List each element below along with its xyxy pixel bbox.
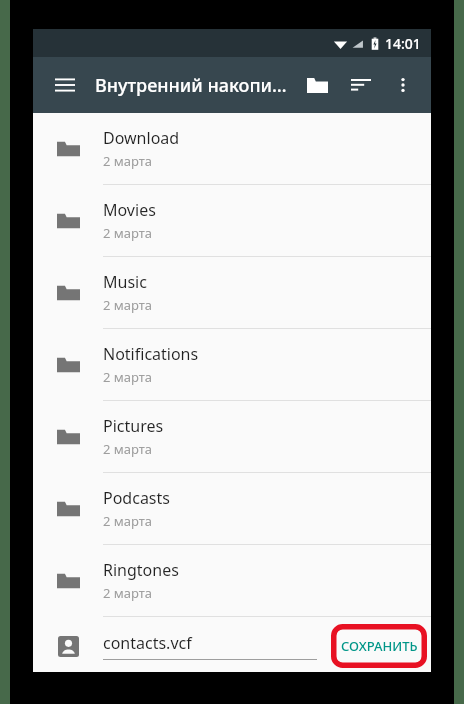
staticText: Podcasts: [103, 487, 170, 509]
staticText: Pictures: [103, 415, 164, 437]
button[interactable]: Sort: [341, 65, 381, 105]
button[interactable]: Music: [33, 257, 431, 328]
button[interactable]: Download: [33, 113, 431, 184]
staticText: Download: [103, 127, 180, 149]
staticText: 2 марта: [103, 368, 153, 386]
staticText: СОХРАНИТЬ: [341, 637, 418, 655]
button[interactable]: Menu: [45, 65, 85, 105]
staticText: 14:01: [385, 34, 421, 53]
button[interactable]: New folder: [297, 65, 337, 105]
staticText: 2 марта: [103, 152, 153, 170]
staticText: 2 марта: [103, 512, 153, 530]
button[interactable]: More options: [383, 65, 423, 105]
staticText: 2 марта: [103, 440, 153, 458]
staticText: contacts.vcf: [103, 632, 192, 654]
staticText: 2 марта: [103, 584, 153, 602]
staticText: Ringtones: [103, 559, 179, 581]
staticText: Внутренний накопи…: [95, 73, 287, 98]
staticText: Music: [103, 271, 147, 293]
button[interactable]: Notifications: [33, 329, 431, 400]
staticText: Notifications: [103, 343, 199, 365]
button[interactable]: Movies: [33, 185, 431, 256]
staticText: 2 марта: [103, 224, 153, 242]
staticText: 2 марта: [103, 296, 153, 314]
button[interactable]: Pictures: [33, 401, 431, 472]
button[interactable]: СОХРАНИТЬ: [331, 624, 427, 668]
button[interactable]: Podcasts: [33, 473, 431, 544]
staticText: Movies: [103, 199, 156, 221]
button[interactable]: Ringtones: [33, 545, 431, 616]
